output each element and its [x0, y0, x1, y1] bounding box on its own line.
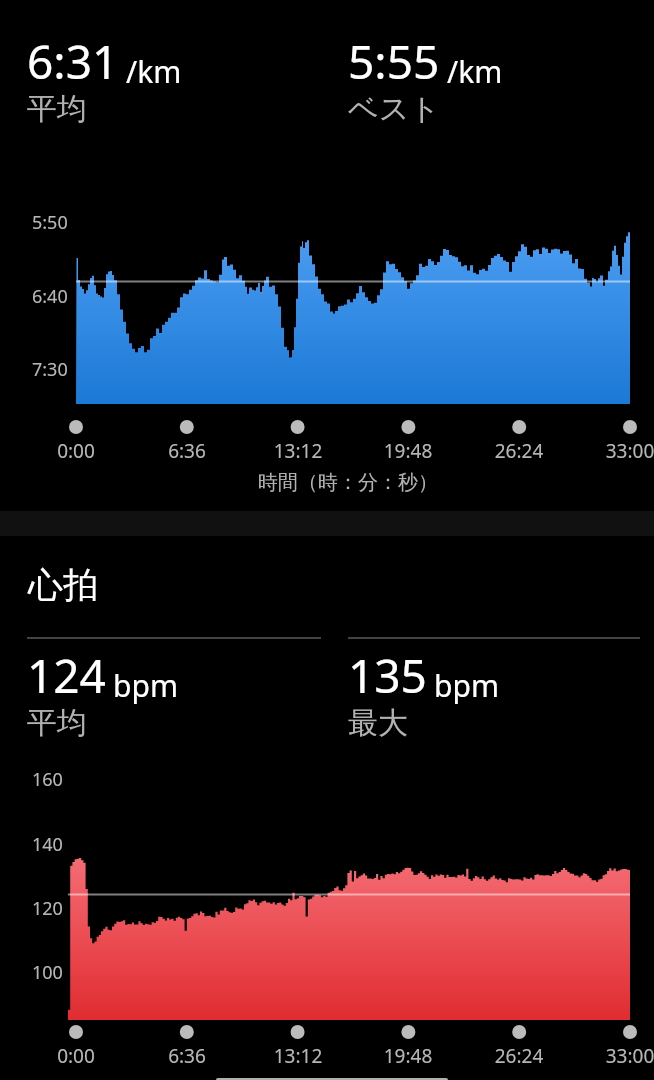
- staticText: 26:24: [459, 438, 579, 464]
- staticText: 135: [348, 644, 427, 707]
- staticText: 100: [32, 960, 63, 985]
- staticText: 13:12: [238, 1043, 358, 1069]
- staticText: /km: [447, 51, 503, 92]
- staticText: bpm: [113, 665, 178, 706]
- staticText: 7:30: [32, 357, 68, 382]
- staticText: 5:55: [348, 30, 440, 93]
- staticText: 160: [32, 767, 63, 792]
- staticText: 心拍: [28, 563, 98, 607]
- staticText: 124: [27, 644, 106, 707]
- staticText: 120: [32, 896, 63, 921]
- staticText: 26:24: [459, 1043, 579, 1069]
- staticText: 最大: [348, 704, 408, 742]
- staticText: ベスト: [348, 90, 441, 128]
- staticText: 平均: [27, 704, 87, 742]
- staticText: 0:00: [16, 1043, 136, 1069]
- button[interactable]: 心拍 平均 124 bpm、最大 135 bpm: [0, 536, 654, 1080]
- staticText: 140: [32, 832, 63, 857]
- staticText: bpm: [434, 665, 499, 706]
- staticText: 19:48: [348, 438, 468, 464]
- staticText: 19:48: [348, 1043, 468, 1069]
- button[interactable]: ペース 平均 6:31 /km、ベスト 5:55 /km: [0, 0, 654, 511]
- staticText: 13:12: [238, 438, 358, 464]
- staticText: 平均: [27, 90, 87, 128]
- staticText: 6:31: [27, 30, 119, 93]
- staticText: 6:36: [127, 438, 247, 464]
- staticText: 0:00: [16, 438, 136, 464]
- staticText: 時間（時：分：秒）: [198, 470, 498, 495]
- staticText: 6:40: [32, 284, 68, 309]
- staticText: 33:00: [570, 1043, 654, 1069]
- staticText: 5:50: [32, 210, 68, 235]
- staticText: /km: [126, 51, 182, 92]
- staticText: 33:00: [570, 438, 654, 464]
- staticText: 6:36: [127, 1043, 247, 1069]
